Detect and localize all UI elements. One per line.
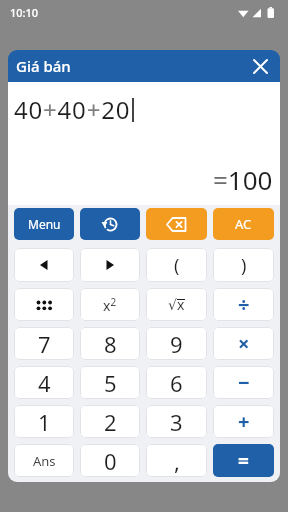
staticText: ) [241,253,247,278]
staticText: − [238,369,250,396]
button[interactable] [14,248,74,282]
button[interactable]: = [213,444,274,477]
staticText: 6 [170,368,183,398]
button[interactable]: 7 [14,327,74,360]
button[interactable] [240,50,280,82]
staticText: 3 [170,407,183,437]
button[interactable] [146,208,207,240]
staticText: 4 [38,368,51,398]
staticText: √x [168,295,185,314]
button[interactable]: 5 [80,366,140,399]
button[interactable]: 4 [14,366,74,399]
button[interactable]: ( [146,248,207,282]
button[interactable]: − [213,366,274,399]
staticText: 10:10 [10,5,39,20]
staticText: 2 [104,407,117,437]
staticText: × [238,330,250,357]
button[interactable]: 6 [146,366,207,399]
button[interactable]: Menu [14,208,74,240]
staticText: x2 [103,295,117,315]
staticText: + [238,408,250,435]
button[interactable] [80,208,140,240]
staticText: 0 [104,446,117,476]
button[interactable]: 1 [14,405,74,438]
staticText: Menu [28,216,61,232]
button[interactable]: AC [213,208,274,240]
button[interactable]: √x [146,288,207,321]
button[interactable]: 3 [146,405,207,438]
staticText: 40+40+20 [14,93,131,126]
button[interactable]: Ans [14,444,74,477]
button[interactable]: × [213,327,274,360]
staticText: 9 [170,329,183,359]
staticText: 8 [104,329,117,359]
button[interactable]: , [146,444,207,477]
staticText: Ans [33,452,56,470]
staticText: ( [174,253,180,278]
button[interactable]: 0 [80,444,140,477]
staticText: = [238,448,249,474]
staticText: Giá bán [16,56,71,76]
button[interactable]: 2 [80,405,140,438]
button[interactable]: + [213,405,274,438]
button[interactable]: x2 [80,288,140,321]
staticText: 5 [104,368,117,398]
staticText: 1 [38,407,51,437]
button[interactable]: ) [213,248,274,282]
button[interactable] [14,288,74,321]
staticText: ÷ [238,291,250,318]
staticText: , [174,446,180,476]
button[interactable] [80,248,140,282]
button[interactable]: ÷ [213,288,274,321]
staticText: 7 [38,329,51,359]
button[interactable]: 8 [80,327,140,360]
staticText: AC [235,215,252,233]
staticText: =100 [213,162,273,197]
button[interactable]: 9 [146,327,207,360]
